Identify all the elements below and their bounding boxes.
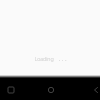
- staticText: Loading: [34, 55, 54, 62]
- button[interactable]: Back: [85, 79, 100, 100]
- button[interactable]: Home: [40, 79, 61, 100]
- staticText: . . .: [58, 54, 67, 64]
- button[interactable]: Recent apps: [0, 79, 21, 100]
